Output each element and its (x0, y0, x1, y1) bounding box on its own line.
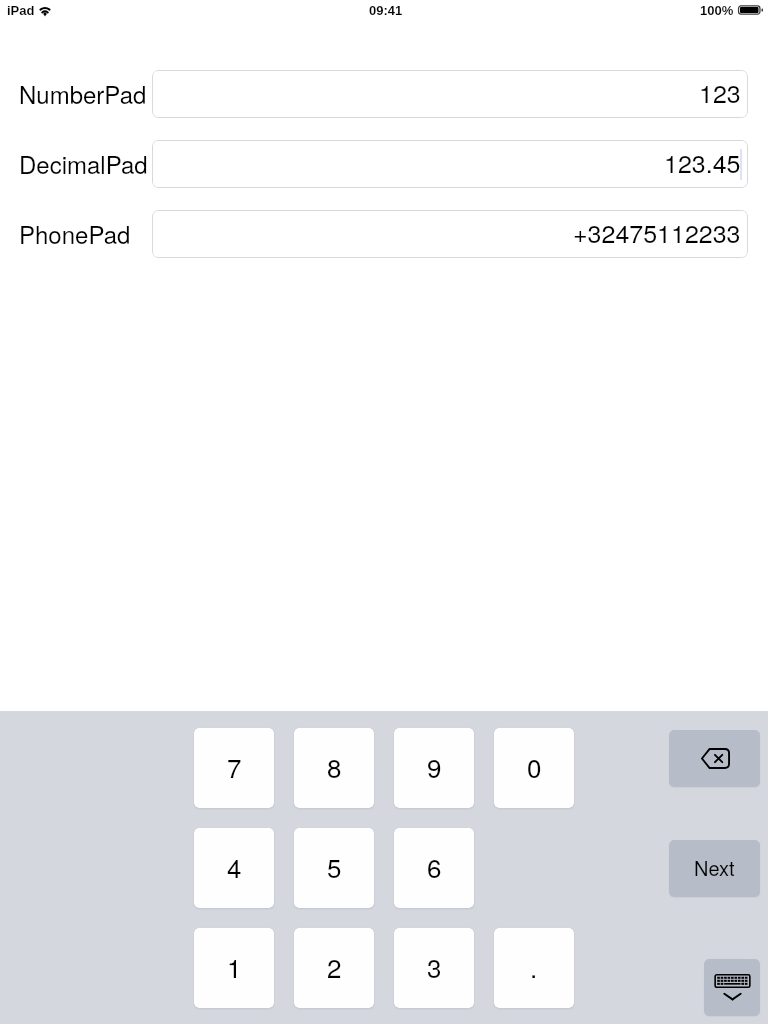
button[interactable]: . (494, 928, 574, 1008)
staticText: 5 (327, 848, 342, 885)
staticText: 7 (227, 748, 242, 785)
staticText: +32475112233 (573, 214, 741, 250)
staticText: 2 (327, 948, 342, 985)
button[interactable]: 123.45 (152, 140, 748, 188)
staticText: 3 (427, 948, 442, 985)
staticText: . (530, 948, 538, 985)
staticText: Next (694, 853, 735, 882)
button[interactable]: 3 (394, 928, 474, 1008)
button[interactable]: Next (669, 840, 760, 897)
staticText: 1 (227, 948, 242, 985)
button[interactable]: 1 (194, 928, 274, 1008)
button[interactable]: 4 (194, 828, 274, 908)
staticText: 0 (527, 748, 542, 785)
button[interactable]: 5 (294, 828, 374, 908)
staticText: 123.45 (664, 144, 741, 180)
staticText: 8 (327, 748, 342, 785)
staticText: 9 (427, 748, 442, 785)
button[interactable]: 6 (394, 828, 474, 908)
staticText: 4 (227, 848, 242, 885)
staticText: PhonePad (19, 216, 131, 250)
staticText: 09:41 (369, 3, 403, 18)
button[interactable]: 0 (494, 728, 574, 808)
button[interactable]: Backspace (669, 730, 760, 787)
button[interactable]: 123 (152, 70, 748, 118)
staticText: 100% (700, 3, 734, 18)
button[interactable]: 9 (394, 728, 474, 808)
staticText: DecimalPad (19, 146, 148, 180)
button[interactable]: 8 (294, 728, 374, 808)
staticText: 123 (699, 74, 741, 110)
staticText: 6 (427, 848, 442, 885)
staticText: NumberPad (19, 76, 147, 110)
button[interactable]: 2 (294, 928, 374, 1008)
button[interactable]: +32475112233 (152, 210, 748, 258)
button[interactable]: 7 (194, 728, 274, 808)
button[interactable]: Hide keyboard (704, 959, 760, 1016)
staticText: iPad (7, 3, 35, 18)
